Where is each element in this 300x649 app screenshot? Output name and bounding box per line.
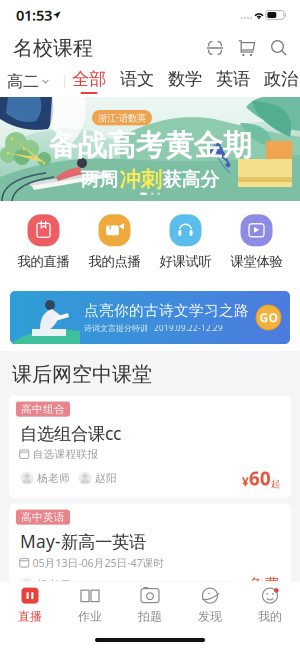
staticText: 高二 [7,72,39,91]
staticText: 英语 [216,68,250,90]
button[interactable]: 购物车 [231,32,263,64]
staticText: 课堂体验 [230,253,282,270]
button[interactable]: 作业 [60,581,120,627]
staticText: GO [259,309,277,325]
staticText: 浙江·语数英 [98,111,146,124]
button[interactable]: 扫一扫 [199,32,231,64]
staticText: 备战高考黄金期 [48,127,251,163]
button[interactable]: 政治 [257,66,300,97]
button[interactable]: 我的直播 [8,201,79,283]
button[interactable]: 发现 [180,581,240,627]
button[interactable]: 语文 [113,66,161,97]
staticText: 获高分 [162,168,219,191]
button[interactable]: 全部 [65,66,113,97]
staticText: 直播 [18,609,42,624]
staticText: 诗词文言提分特训 2019.09.22-12.29 [84,323,223,333]
button[interactable]: 高二 [0,66,64,97]
staticText: 杨老师 [37,578,70,591]
staticText: 我的点播 [88,253,140,270]
button[interactable]: 点亮你的古诗文学习之路 [0,283,300,351]
button[interactable]: 高中组合 [0,396,300,504]
staticText: 杨老师 [37,472,70,485]
button[interactable]: 好课试听 [150,201,221,283]
staticText: 语文 [120,68,154,90]
staticText: 60 [249,466,271,491]
staticText: 自选课程联报 [32,448,98,461]
button[interactable]: 拍题 [120,581,180,627]
staticText: 自选组合课cc [20,422,121,445]
staticText: 拍题 [138,609,162,624]
staticText: 冲刺 [119,166,161,193]
staticText: May-新高一英语 [20,530,146,553]
button[interactable]: 课堂体验 [221,201,292,283]
button[interactable]: 浙江·语数英 [0,97,300,201]
button[interactable]: 英语 [209,66,257,97]
staticText: ¥ [242,474,249,489]
staticText: 01:53 [16,5,52,25]
button[interactable]: 我的 [240,581,300,627]
button[interactable]: 直播 [0,581,60,627]
staticText: 点亮你的古诗文学习之路 [84,302,249,320]
button[interactable]: 高中英语 [0,504,300,608]
staticText: 05月13日-06月25日·47课时 [32,556,164,570]
staticText: 课后网空中课堂 [12,362,152,387]
staticText: 数学 [168,68,202,90]
button[interactable]: 数学 [161,66,209,97]
staticText: 高中英语 [21,511,65,524]
staticText: 好课试听 [159,253,211,270]
staticText: 全部 [72,68,106,90]
staticText: 两周 [80,168,118,191]
staticText: 高中组合 [21,403,65,416]
staticText: 发现 [198,609,222,624]
staticText: 名校课程 [13,36,93,60]
staticText: 我的直播 [17,253,69,270]
staticText: 作业 [78,609,102,624]
staticText: 我的 [258,609,282,624]
button[interactable]: 我的点播 [79,201,150,283]
staticText: 免费 [248,575,280,595]
staticText: 政治 [264,68,298,90]
staticText: 赵阳 [95,472,117,485]
staticText: 起 [271,478,280,490]
button[interactable]: 搜索 [263,32,295,64]
